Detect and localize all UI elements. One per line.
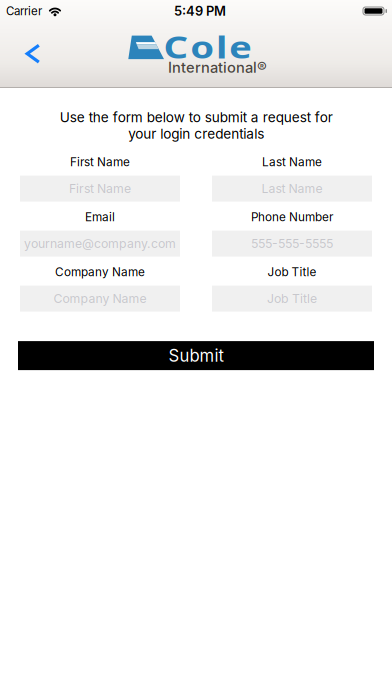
button[interactable]: Company Name (20, 286, 180, 312)
staticText: Use the form below to submit a request f… (59, 109, 332, 142)
staticText: Last Name (262, 155, 322, 169)
staticText: 5:49 PM (174, 3, 226, 19)
staticText: Company Name (53, 291, 146, 306)
staticText: Last Name (261, 181, 322, 196)
button[interactable]: Phone Number (212, 231, 372, 257)
staticText: yourname@company.com (24, 236, 176, 251)
staticText: Submit (168, 345, 223, 366)
staticText: Job Title (267, 265, 316, 279)
button[interactable]: First Name (20, 176, 180, 202)
staticText: First Name (69, 181, 131, 196)
staticText: Email (85, 210, 115, 224)
button[interactable]: Last Name (212, 176, 372, 202)
button[interactable]: Back (0, 33, 41, 73)
staticText: First Name (70, 155, 130, 169)
button[interactable]: Submit (18, 341, 374, 370)
staticText: Cole (172, 26, 243, 67)
staticText: 555-555-5555 (251, 236, 333, 251)
staticText: Phone Number (251, 210, 333, 224)
staticText: Company Name (55, 265, 145, 279)
staticText: Carrier (6, 4, 42, 18)
staticText: Job Title (267, 291, 317, 306)
staticText: International® (168, 59, 267, 76)
button[interactable]: Job Title (212, 286, 372, 312)
button[interactable]: Email (20, 231, 180, 257)
